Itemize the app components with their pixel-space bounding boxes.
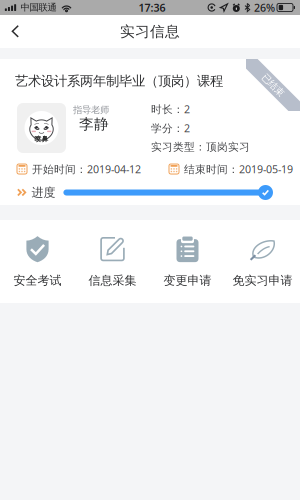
staticText: 指导老师 (73, 104, 109, 116)
staticText: 时长：2 (151, 102, 190, 116)
staticText: 李静 (79, 115, 109, 133)
staticText: 安全考试 (13, 273, 61, 288)
staticText: 艺术设计系两年制毕业（顶岗）课程 (15, 73, 223, 89)
staticText: 实习类型：顶岗实习 (151, 140, 250, 153)
staticText: 进度 (31, 185, 55, 200)
staticText: 开始时间：2019-04-12 (32, 162, 141, 176)
staticText: 26% (254, 0, 275, 15)
button[interactable]: 安全考试 (0, 220, 75, 303)
staticText: 实习信息 (120, 22, 180, 40)
staticText: 中国联通 (20, 2, 56, 13)
button[interactable]: 返回 (0, 15, 34, 47)
staticText: 变更申请 (163, 273, 211, 288)
staticText: 学分：2 (151, 121, 190, 135)
staticText: 结束时间：2019-05-19 (184, 162, 293, 176)
staticText: 已结束 (259, 79, 286, 91)
staticText: 免实习申请 (232, 273, 292, 288)
staticText: 喷鼻 (34, 135, 48, 143)
button[interactable]: 免实习申请 (225, 220, 300, 303)
staticText: 17:36 (138, 0, 165, 15)
button[interactable]: 变更申请 (150, 220, 225, 303)
button[interactable]: 信息采集 (75, 220, 150, 303)
staticText: 信息采集 (88, 273, 136, 288)
